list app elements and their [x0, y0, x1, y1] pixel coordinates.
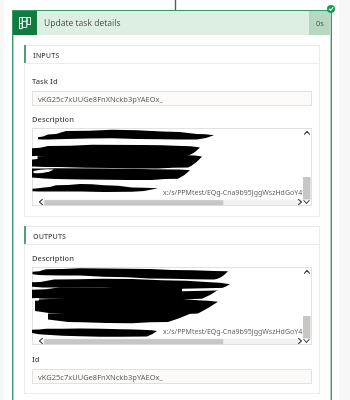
staticText: 0s	[316, 18, 324, 28]
button[interactable]: INPUTS	[24, 45, 320, 63]
staticText: Description	[32, 114, 74, 124]
staticText: vKG25c7xUUGe8FnXNckb3pYAEOx_	[38, 94, 163, 104]
staticText: Task Id	[32, 76, 58, 86]
button[interactable]: Update task details	[13, 11, 331, 35]
staticText: INPUTS	[33, 50, 60, 60]
staticText: x:/s/PPMtest/EQg-Cna9b95JggWszHdGoY4B	[163, 188, 307, 198]
staticText: Description	[32, 253, 74, 263]
button[interactable]: vKG25c7xUUGe8FnXNckb3pYAEOx_	[32, 91, 312, 106]
staticText: OUTPUTS	[33, 231, 66, 241]
button[interactable]: vKG25c7xUUGe8FnXNckb3pYAEOx_	[32, 369, 312, 384]
staticText: vKG25c7xUUGe8FnXNckb3pYAEOx_	[38, 372, 163, 382]
other: Succeeded	[327, 5, 335, 13]
staticText: Id	[32, 354, 40, 364]
staticText: Update task details	[44, 17, 121, 29]
staticText: x:/s/PPMtest/EQg-Cna9b95JggWszHdGoY4B	[163, 327, 307, 337]
button[interactable]: OUTPUTS	[24, 226, 320, 244]
